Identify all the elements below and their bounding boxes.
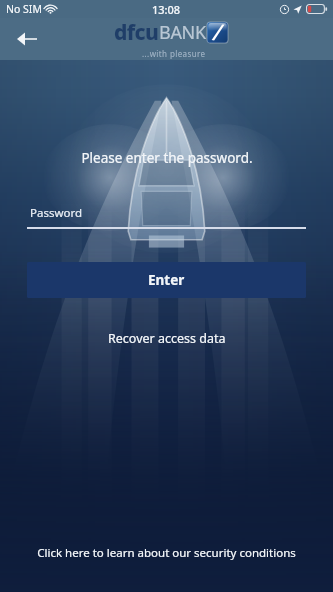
staticText: ...with pleasure <box>142 48 206 59</box>
staticText: Please enter the password. <box>81 149 253 167</box>
staticText: No SIM <box>6 2 42 16</box>
staticText: Click here to learn about our security c… <box>37 545 296 561</box>
staticText: 13:08 <box>152 2 181 17</box>
staticText: dfcu <box>114 18 159 47</box>
button[interactable]: Click here to learn about our security c… <box>27 542 306 564</box>
staticText: Password <box>30 205 83 221</box>
button[interactable]: Password <box>27 205 306 230</box>
button[interactable]: Back <box>8 20 46 58</box>
staticText: Enter <box>148 271 185 289</box>
button[interactable]: Enter <box>27 262 306 298</box>
staticText: BANK <box>159 20 206 45</box>
button[interactable]: Recover access data <box>98 327 236 350</box>
staticText: Recover access data <box>108 330 226 347</box>
